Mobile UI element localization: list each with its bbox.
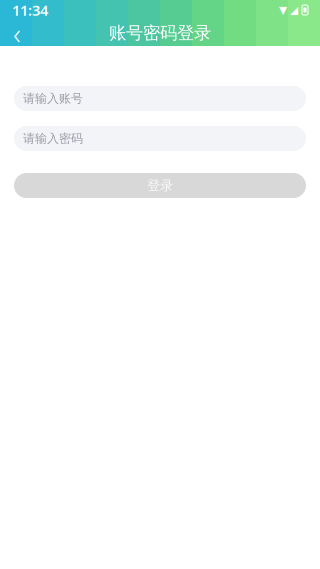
button[interactable]: Back [0, 20, 34, 46]
staticText: 请输入账号 [23, 91, 83, 106]
staticText: ▼ [279, 4, 287, 16]
staticText: 请输入密码 [23, 131, 83, 146]
button[interactable]: 登录 [14, 173, 306, 198]
staticText: 11:34 [12, 0, 48, 20]
staticText: 登录 [147, 177, 173, 194]
button[interactable]: 请输入账号 [14, 86, 306, 111]
button[interactable]: 请输入密码 [14, 126, 306, 151]
staticText: ◢ [290, 4, 298, 16]
staticText: 账号密码登录 [109, 22, 211, 44]
staticText: ‹ [13, 13, 21, 52]
